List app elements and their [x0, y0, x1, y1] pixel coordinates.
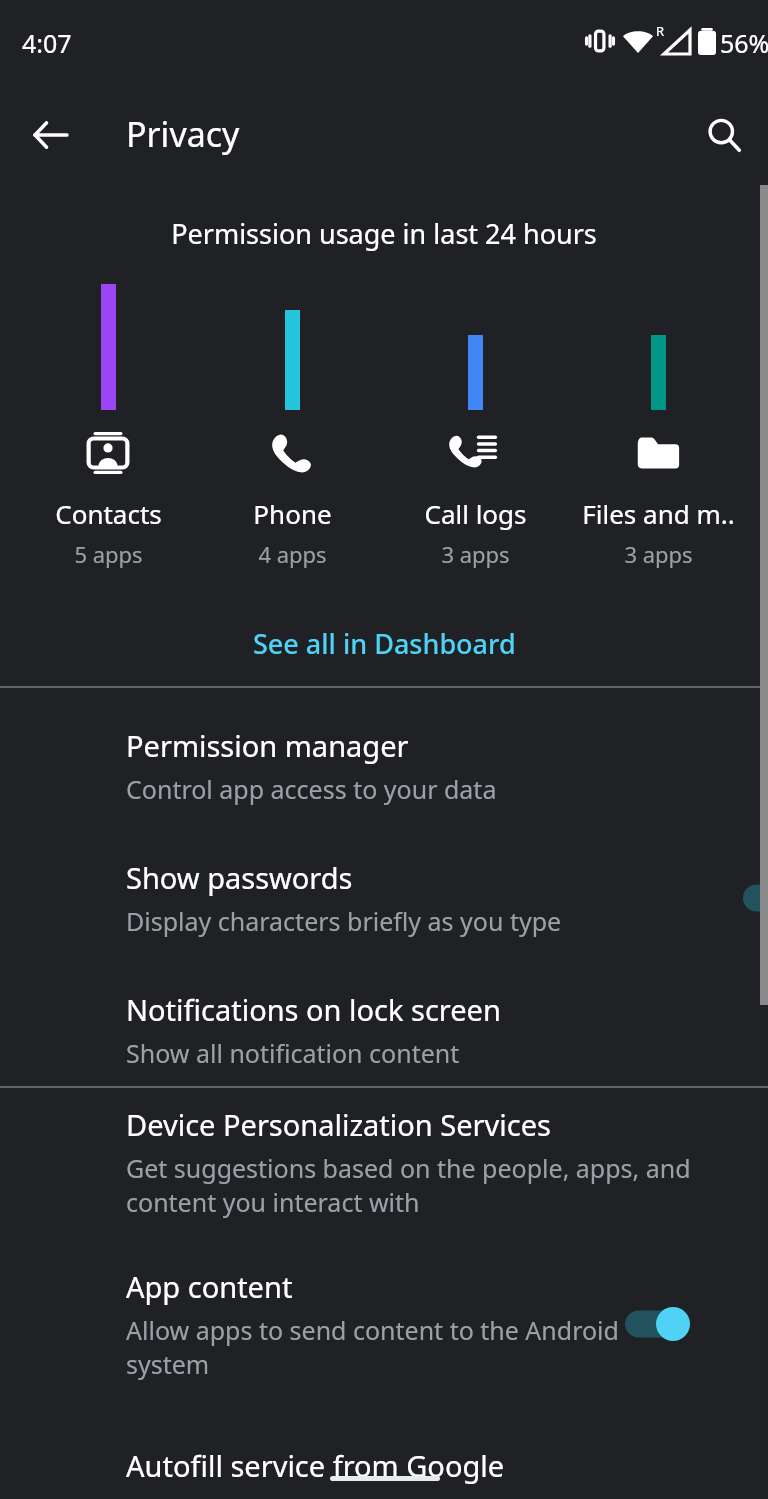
- button[interactable]: Show passwords toggle: [743, 870, 764, 926]
- staticText: Phone: [253, 496, 332, 531]
- button[interactable]: Contacts: [16, 426, 200, 569]
- staticText: Device Personalization Services: [126, 1105, 551, 1144]
- staticText: 4 apps: [258, 539, 327, 569]
- staticText: 3 apps: [624, 539, 693, 569]
- staticText: 3 apps: [441, 539, 510, 569]
- button[interactable]: App content: [0, 1258, 768, 1390]
- staticText: Files and m..: [582, 496, 735, 531]
- staticText: Allow apps to send content to the Androi…: [126, 1313, 626, 1381]
- staticText: Notifications on lock screen: [126, 990, 501, 1029]
- button[interactable]: Back: [14, 99, 86, 171]
- staticText: Display characters briefly as you type: [126, 904, 562, 938]
- button[interactable]: Phone: [200, 426, 384, 569]
- staticText: Autofill service from Google: [126, 1446, 505, 1485]
- staticText: 56%: [720, 26, 768, 60]
- staticText: Control app access to your data: [126, 772, 497, 806]
- staticText: Contacts: [55, 496, 162, 531]
- staticText: Privacy: [126, 111, 240, 157]
- button[interactable]: Show passwords: [0, 832, 768, 964]
- button[interactable]: App content toggle: [623, 1296, 699, 1352]
- button[interactable]: Autofill service from Google: [0, 1420, 768, 1499]
- button[interactable]: Files and m..: [566, 426, 750, 569]
- staticText: 5 apps: [74, 539, 143, 569]
- button[interactable]: Search: [688, 99, 760, 171]
- staticText: Permission usage in last 24 hours: [0, 215, 768, 252]
- staticText: Permission manager: [126, 726, 409, 765]
- staticText: Call logs: [424, 496, 527, 531]
- button[interactable]: Device Personalization Services: [0, 1096, 768, 1228]
- staticText: Get suggestions based on the people, app…: [126, 1151, 716, 1219]
- button[interactable]: Notifications on lock screen: [0, 964, 768, 1096]
- button[interactable]: Call logs: [383, 426, 567, 569]
- button[interactable]: Permission manager: [0, 700, 768, 832]
- staticText: R: [656, 22, 665, 40]
- staticText: Show passwords: [126, 858, 353, 897]
- button[interactable]: See all in Dashboard: [230, 614, 538, 672]
- staticText: Show all notification content: [126, 1036, 460, 1070]
- staticText: 4:07: [22, 26, 72, 60]
- staticText: App content: [126, 1267, 293, 1306]
- staticText: See all in Dashboard: [253, 625, 516, 662]
